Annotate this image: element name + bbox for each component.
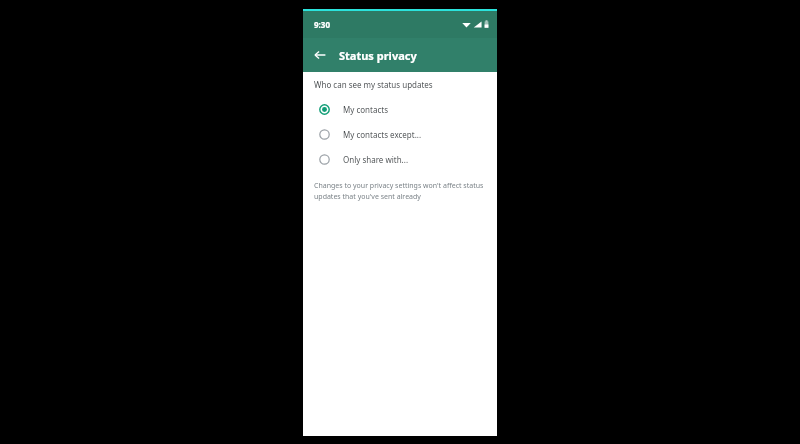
button[interactable]: Back [309, 44, 331, 66]
staticText: Only share with... [343, 154, 409, 165]
staticText: 9:30 [314, 19, 330, 30]
button[interactable]: My contacts [303, 97, 497, 122]
staticText: My contacts except... [343, 129, 422, 140]
button[interactable]: Only share with... [303, 147, 497, 172]
staticText: Status privacy [339, 48, 417, 63]
staticText: Who can see my status updates [314, 79, 433, 90]
staticText: My contacts [343, 104, 388, 115]
button[interactable]: My contacts except... [303, 122, 497, 147]
staticText: Changes to your privacy settings won't a… [314, 181, 486, 201]
